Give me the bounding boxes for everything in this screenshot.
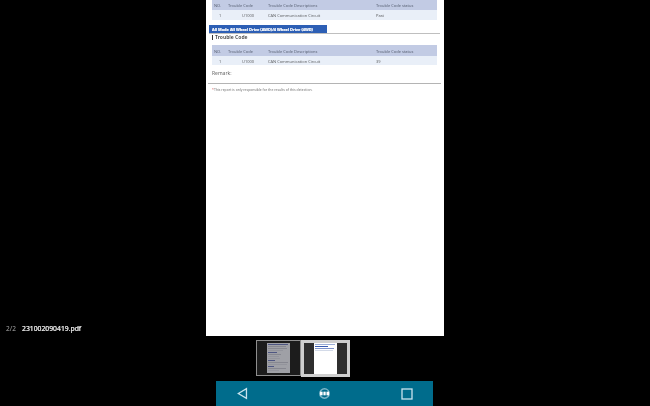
- staticText: 1: [219, 59, 222, 64]
- button[interactable]: Page 1: [257, 341, 300, 375]
- staticText: Trouble Code: [228, 3, 253, 8]
- button[interactable]: PDF page 2: [206, 0, 444, 336]
- staticText: CAN Communication Circuit: [268, 13, 321, 18]
- staticText: 39: [376, 59, 381, 64]
- staticText: NO.: [214, 3, 222, 8]
- staticText: 2/2: [6, 324, 16, 333]
- staticText: Trouble Code Descriptions: [268, 3, 318, 8]
- button[interactable]: Back: [220, 381, 264, 406]
- staticText: Remark:: [212, 70, 232, 77]
- staticText: Past: [376, 13, 385, 18]
- staticText: Trouble Code: [228, 49, 253, 54]
- staticText: Trouble Code: [215, 34, 248, 41]
- staticText: Trouble Code Descriptions: [268, 49, 318, 54]
- button[interactable]: Recent apps: [385, 381, 429, 406]
- staticText: U1000: [242, 13, 255, 18]
- button[interactable]: 2/2: [6, 324, 82, 333]
- staticText: Trouble Code status: [376, 3, 414, 8]
- staticText: *: [212, 87, 214, 92]
- staticText: CAN Communication Circuit: [268, 59, 321, 64]
- staticText: U1000: [242, 59, 255, 64]
- staticText: Trouble Code status: [376, 49, 414, 54]
- staticText: 1: [219, 13, 222, 18]
- button[interactable]: Page 2: [304, 343, 347, 374]
- staticText: This report is only responsible for the …: [214, 87, 313, 92]
- staticText: 231002090419.pdf: [22, 324, 82, 333]
- staticText: All Mode All Wheel Drive (AWD)/4 Wheel D…: [212, 27, 313, 32]
- button[interactable]: Home: [302, 381, 346, 406]
- staticText: NO.: [214, 49, 222, 54]
